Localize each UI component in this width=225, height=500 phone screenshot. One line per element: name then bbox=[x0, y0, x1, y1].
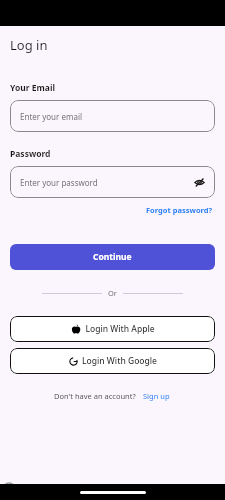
staticText: Continue bbox=[93, 251, 132, 263]
staticText: Or bbox=[108, 288, 117, 298]
staticText: Enter your password bbox=[20, 177, 98, 188]
staticText: Password bbox=[10, 148, 51, 160]
button[interactable]: Enter your password bbox=[10, 166, 215, 198]
button[interactable]: Sign up bbox=[141, 390, 172, 402]
staticText: Sign up bbox=[143, 391, 170, 401]
button[interactable]: Enter your email bbox=[10, 100, 215, 132]
staticText: Your Email bbox=[10, 82, 55, 94]
button[interactable]: Show password bbox=[191, 174, 207, 190]
button[interactable]: Login With Apple bbox=[10, 316, 215, 342]
button[interactable]: Continue bbox=[10, 244, 215, 270]
staticText: Login With Google bbox=[82, 355, 157, 367]
staticText: Forgot password? bbox=[146, 205, 213, 215]
staticText: Enter your email bbox=[20, 111, 83, 122]
staticText: Log in bbox=[10, 36, 48, 54]
button[interactable]: Login With Google bbox=[10, 348, 215, 374]
staticText: Don't have an account? bbox=[54, 391, 136, 401]
staticText: Login With Apple bbox=[85, 323, 155, 335]
button[interactable]: Forgot password? bbox=[144, 204, 215, 216]
